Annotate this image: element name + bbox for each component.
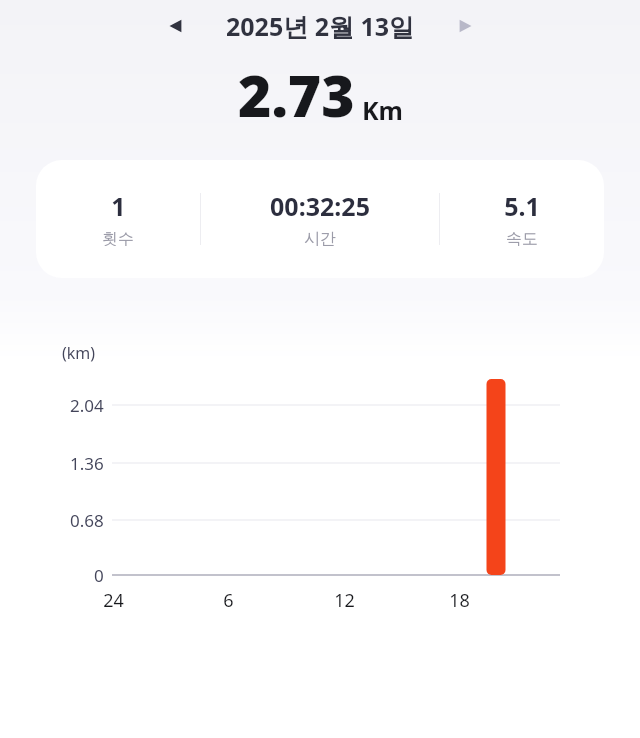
staticText: 2.04 — [70, 394, 104, 417]
staticText: Km — [362, 93, 403, 127]
staticText: 24 — [103, 588, 124, 613]
button[interactable]: Next day — [447, 8, 483, 44]
staticText: 1.36 — [70, 452, 104, 475]
staticText: 00:32:25 — [270, 189, 370, 223]
staticText: 2025년 2월 13일 — [226, 9, 415, 43]
staticText: 횟수 — [102, 229, 134, 249]
button[interactable]: 1 — [36, 189, 200, 249]
button[interactable]: 00:32:25 — [201, 189, 439, 249]
button[interactable]: 5.1 — [440, 189, 604, 249]
button[interactable]: Previous day — [158, 8, 194, 44]
button[interactable]: 1 — [36, 160, 604, 278]
staticText: 0 — [94, 564, 104, 587]
staticText: 0.68 — [70, 509, 104, 532]
staticText: 속도 — [506, 229, 538, 249]
staticText: 5.1 — [504, 189, 540, 223]
staticText: 18 — [449, 588, 470, 613]
staticText: 6 — [223, 588, 234, 613]
staticText: 2.73 — [238, 56, 355, 134]
staticText: 12 — [334, 588, 355, 613]
staticText: 시간 — [304, 229, 336, 249]
staticText: (km) — [62, 342, 96, 364]
staticText: 1 — [111, 189, 126, 223]
